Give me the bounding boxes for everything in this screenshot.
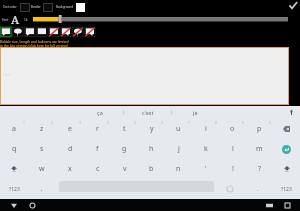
button[interactable]: y <box>138 119 165 139</box>
button[interactable]: Bubble size, Length and balloons are lim… <box>0 37 300 47</box>
staticText: y <box>150 124 154 134</box>
button[interactable]: Home <box>26 199 38 211</box>
staticText: a <box>12 124 16 134</box>
staticText: Text color <box>3 5 17 9</box>
button[interactable]: c'est <box>124 106 171 119</box>
button[interactable]: e <box>56 119 84 139</box>
button[interactable]: a <box>0 119 28 139</box>
staticText: , <box>41 185 43 193</box>
staticText: Font <box>2 18 9 22</box>
staticText: ! <box>232 164 234 174</box>
button[interactable]: k <box>192 139 219 159</box>
staticText: c <box>96 164 100 174</box>
button[interactable]: g <box>111 139 138 159</box>
button[interactable]: Balloon style 5 <box>48 27 60 37</box>
staticText: c'est <box>142 109 154 116</box>
button[interactable]: Voice input <box>282 106 300 119</box>
staticText: Bubble size, Length and balloons are lim… <box>0 39 69 43</box>
button[interactable]: c <box>84 159 111 179</box>
staticText: t <box>123 124 126 134</box>
button[interactable]: Apply <box>287 0 299 12</box>
staticText: ça <box>97 109 103 116</box>
staticText: in the Lite version (click here for full… <box>0 43 69 47</box>
button[interactable]: Balloon style 2 <box>12 27 24 37</box>
button[interactable]: v <box>111 159 138 179</box>
staticText: b <box>149 164 154 174</box>
button[interactable]: r <box>84 119 111 139</box>
button[interactable]: Recent apps <box>281 199 293 211</box>
button[interactable]: Balloon style 1 <box>0 27 12 37</box>
staticText: 9 <box>242 121 244 125</box>
staticText: v <box>123 164 127 174</box>
button[interactable]: z <box>28 119 56 139</box>
button[interactable]: Hide keyboard <box>263 199 275 211</box>
staticText: ?123 <box>281 186 292 193</box>
staticText: 6 <box>161 121 163 125</box>
button[interactable]: Font size <box>33 15 288 23</box>
button[interactable]: Balloon style 6 <box>60 27 72 37</box>
button[interactable]: w <box>28 159 56 179</box>
button[interactable]: p <box>246 119 273 139</box>
button[interactable]: b <box>138 159 165 179</box>
staticText: d <box>68 144 73 154</box>
button[interactable]: ça <box>76 106 123 119</box>
staticText: Background <box>56 5 74 9</box>
button[interactable]: ! <box>219 159 246 179</box>
staticText: 3 <box>79 121 81 125</box>
button[interactable]: u <box>165 119 192 139</box>
staticText: Border <box>31 5 41 9</box>
button[interactable]: Enter <box>273 139 300 159</box>
button[interactable]: Shift <box>0 159 28 179</box>
button[interactable]: ? <box>246 159 273 179</box>
button[interactable]: Border swatch <box>43 3 53 12</box>
button[interactable]: Message text <box>0 47 289 105</box>
staticText: 5 <box>134 121 136 125</box>
staticText: s <box>40 144 44 154</box>
button[interactable]: n <box>165 159 192 179</box>
staticText: k <box>204 144 208 154</box>
staticText: p <box>257 124 262 134</box>
button[interactable]: j <box>165 139 192 159</box>
staticText: m <box>256 144 263 154</box>
staticText: ' <box>205 164 207 174</box>
staticText: 1 <box>23 121 25 125</box>
staticText: j <box>178 144 180 154</box>
button[interactable]: Text color swatch <box>20 3 30 12</box>
staticText: e <box>68 124 72 134</box>
button[interactable]: Balloon style 7 <box>72 27 84 37</box>
button[interactable]: o <box>219 119 246 139</box>
button[interactable]: t <box>111 119 138 139</box>
staticText: i <box>205 124 207 134</box>
button[interactable]: , <box>28 179 56 199</box>
button[interactable]: m <box>246 139 273 159</box>
staticText: 0 <box>269 121 271 125</box>
button[interactable]: f <box>84 139 111 159</box>
button[interactable]: ?123 <box>0 179 28 199</box>
button[interactable]: ' <box>192 159 219 179</box>
staticText: je <box>193 109 198 116</box>
button[interactable]: je <box>172 106 219 119</box>
staticText: h <box>149 144 154 154</box>
button[interactable]: Backspace <box>273 119 300 139</box>
staticText: q <box>12 144 17 154</box>
button[interactable]: d <box>56 139 84 159</box>
staticText: o <box>230 124 235 134</box>
button[interactable]: A <box>10 12 21 27</box>
button[interactable]: x <box>56 159 84 179</box>
button[interactable]: i <box>192 119 219 139</box>
button[interactable]: s <box>28 139 56 159</box>
button[interactable]: Balloon style 4 <box>36 27 48 37</box>
button[interactable]: Emoji <box>216 179 244 199</box>
button[interactable]: Shift <box>273 159 300 179</box>
button[interactable]: ?123 <box>272 179 300 199</box>
button[interactable]: q <box>0 139 28 159</box>
button[interactable]: Back <box>8 199 20 211</box>
button[interactable]: Balloon style 3 <box>24 27 36 37</box>
staticText: 7 <box>188 121 190 125</box>
button[interactable]: Balloon style 8 <box>84 27 96 37</box>
button[interactable]: l <box>219 139 246 159</box>
button[interactable]: h <box>138 139 165 159</box>
